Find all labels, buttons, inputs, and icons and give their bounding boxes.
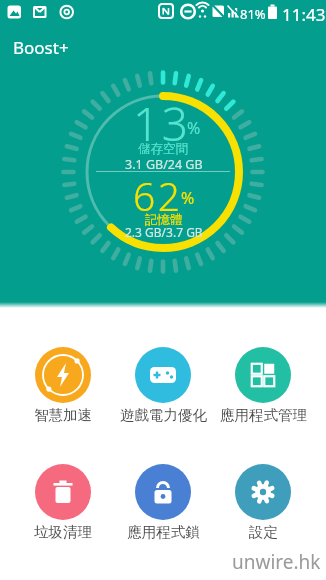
button[interactable]: Boost+ [0,24,326,56]
staticText: 13 [133,92,191,155]
staticText: 設定 [249,523,278,541]
staticText: 3.1 GB/24 GB [125,156,203,173]
button[interactable]: 應用程式鎖 [113,464,213,541]
staticText: 遊戲電力優化 [120,406,207,424]
button[interactable]: 應用程式管理 [213,347,313,424]
staticText: 儲存空間 [138,141,188,157]
staticText: 2.3 GB/3.7 GB [125,224,203,240]
staticText: % [187,117,201,139]
staticText: 記憶體 [145,212,183,228]
staticText: 應用程式鎖 [127,523,200,541]
staticText: 智慧加速 [34,406,92,424]
staticText: 應用程式管理 [220,406,307,424]
button[interactable]: 遊戲電力優化 [113,347,213,424]
staticText: 81% [240,5,266,21]
staticText: 62 [133,169,183,222]
staticText: 11:43 [282,3,326,23]
button[interactable]: 設定 [213,464,313,541]
staticText: 垃圾清理 [34,523,92,541]
staticText: % [181,187,195,209]
button[interactable]: 垃圾清理 [13,464,113,541]
button[interactable]: 智慧加速 [13,347,113,424]
staticText: unwire.hk [232,549,321,575]
staticText: Boost+ [13,36,69,59]
